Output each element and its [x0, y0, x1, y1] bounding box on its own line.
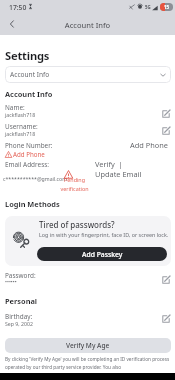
staticText: Settings [5, 48, 50, 63]
button[interactable]: Add Passkey [37, 247, 167, 261]
staticText: Add Phone [130, 140, 168, 150]
staticText: Password: [5, 271, 36, 280]
button[interactable]: Edit [160, 125, 171, 136]
button[interactable]: Edit [160, 313, 171, 324]
button[interactable]: Edit [160, 108, 171, 119]
staticText: Tired of passwords? [39, 219, 115, 230]
button[interactable]: Add Phone [130, 140, 168, 150]
staticText: Verify | [95, 159, 123, 169]
staticText: Pending verification [60, 176, 89, 192]
staticText: •••••• [5, 278, 17, 285]
staticText: Birthday: [5, 312, 33, 321]
staticText: Account Info [0, 20, 175, 30]
staticText: jackflash718 [5, 111, 36, 118]
staticText: Account Info [10, 70, 50, 79]
staticText: Add Passkey [82, 250, 123, 259]
staticText: jackflash718 [5, 130, 36, 137]
button[interactable]: Edit [160, 274, 171, 285]
button[interactable]: Account Info [5, 66, 171, 83]
staticText: Username: [5, 122, 38, 131]
button[interactable]: Verify | [95, 159, 142, 179]
staticText: Name: [5, 103, 25, 112]
staticText: Add Phone [13, 150, 45, 158]
staticText: By clicking 'Verify My Age' you will be … [5, 356, 171, 370]
staticText: Update Email [95, 169, 142, 179]
button[interactable]: Add Phone [5, 150, 45, 158]
staticText: Personal [5, 296, 38, 306]
button[interactable]: Verify My Age [5, 338, 171, 353]
staticText: Email Address: [5, 160, 49, 169]
staticText: Account Info [5, 89, 53, 99]
button[interactable]: Back [5, 17, 19, 31]
staticText: Phone Number: [5, 141, 53, 150]
staticText: 15 [164, 4, 170, 10]
staticText: 17:50 [9, 3, 27, 12]
staticText: Sep 9, 2002 [5, 320, 33, 327]
staticText: Log in with your fingerprint, face ID, o… [39, 231, 169, 238]
staticText: Verify My Age [66, 341, 110, 350]
staticText: c***********@gmail.com [3, 175, 68, 182]
staticText: Login Methods [5, 199, 60, 209]
staticText: 5G [145, 4, 151, 10]
